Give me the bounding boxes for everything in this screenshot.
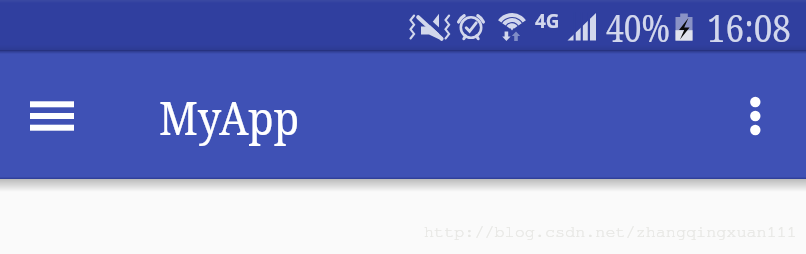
- staticText: 40%: [606, 1, 670, 53]
- staticText: 16:08: [707, 1, 791, 53]
- button[interactable]: Menu: [14, 86, 90, 146]
- staticText: http://blog.csdn.net/zhangqingxuan111: [424, 224, 797, 241]
- staticText: 4G: [535, 8, 560, 34]
- staticText: MyApp: [159, 86, 299, 149]
- button[interactable]: More options: [727, 86, 783, 146]
